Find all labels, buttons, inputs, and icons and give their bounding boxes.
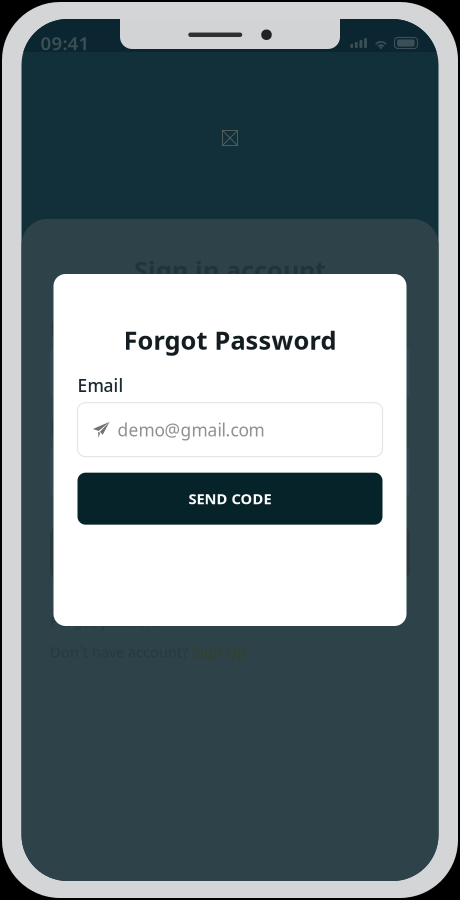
button[interactable]: SEND CODE — [77, 473, 382, 525]
button[interactable]: SIGN IN — [50, 527, 410, 579]
image — [222, 130, 238, 146]
staticText: Sign in account — [134, 253, 326, 287]
button[interactable]: Forgot pasword? — [50, 612, 410, 631]
staticText: Sign Up — [192, 642, 246, 662]
staticText: Forgot Password — [123, 323, 336, 357]
staticText: Email — [50, 317, 96, 340]
staticText: demo@gmail.com — [117, 418, 264, 441]
staticText: Email — [77, 374, 123, 397]
staticText: Password — [50, 416, 130, 439]
staticText: 09:41 — [40, 31, 89, 55]
button[interactable]: demo@gmail.com — [77, 403, 382, 457]
button[interactable]: Sign Up — [192, 642, 246, 662]
staticText: SEND CODE — [188, 489, 271, 508]
staticText: Forgot pasword? — [50, 612, 168, 631]
